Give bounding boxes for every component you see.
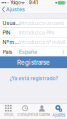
staticText: Ajustes (6, 6, 25, 13)
staticText: Usuario (2, 20, 19, 26)
button[interactable]: Consumo (17, 103, 34, 119)
button[interactable]: ¿Ya está registrado? (0, 75, 67, 81)
button[interactable]: Inicio (0, 103, 17, 119)
staticText: Introduzca usuario (19, 20, 64, 26)
staticText: Introduzca PIN (19, 29, 54, 36)
staticText: España (19, 49, 37, 55)
staticText: 9:41 (29, 0, 38, 5)
button[interactable]: Usuario (0, 18, 67, 28)
button[interactable]: Mi cuenta (33, 103, 50, 119)
staticText: Mi cuenta (34, 112, 50, 117)
staticText: Ajustes (52, 113, 65, 117)
staticText: Inicio (4, 112, 13, 117)
staticText: Registrarse (17, 59, 50, 66)
staticText: PIN (2, 29, 10, 36)
button[interactable]: PIN (0, 28, 67, 37)
staticText: ¿Ya está registrado? (9, 75, 57, 81)
button[interactable]: Ajustes (0, 5, 28, 13)
staticText: País (2, 49, 12, 55)
button[interactable]: Registrarse (0, 56, 67, 68)
staticText: Nº móvil (2, 39, 19, 45)
staticText: Consumo (17, 112, 33, 117)
button[interactable]: Nº móvil (0, 38, 67, 47)
button[interactable]: País (0, 47, 67, 56)
staticText: Yoigo (10, 0, 20, 5)
button[interactable]: Ajustes (50, 103, 67, 119)
staticText: Introduzca nº móvil (19, 39, 64, 45)
